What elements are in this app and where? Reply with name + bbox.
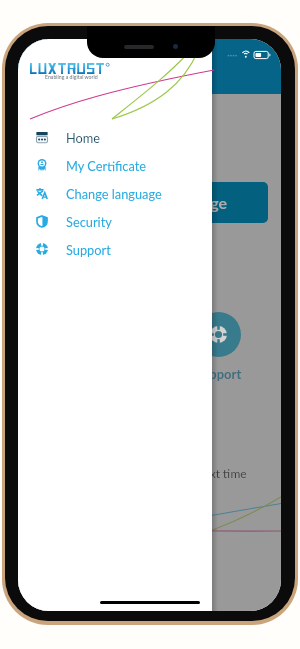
button[interactable]: Home <box>18 123 212 151</box>
button[interactable]: Support <box>196 312 241 357</box>
staticText: Home <box>66 130 101 145</box>
staticText: Change language <box>106 193 228 212</box>
button[interactable]: Change language <box>18 179 212 207</box>
button[interactable]: Support <box>18 235 212 263</box>
staticText: Support <box>66 242 111 257</box>
button[interactable]: Change language <box>66 182 268 223</box>
staticText: Security <box>66 214 112 229</box>
staticText: Enabling a digital world <box>45 74 98 80</box>
button[interactable]: Security <box>18 207 212 235</box>
staticText: My Certificate <box>66 158 147 173</box>
button[interactable]: My Certificate <box>18 151 212 179</box>
staticText: Change language <box>66 186 162 201</box>
staticText: Support <box>195 366 242 382</box>
staticText: Ask me next time <box>155 466 247 480</box>
